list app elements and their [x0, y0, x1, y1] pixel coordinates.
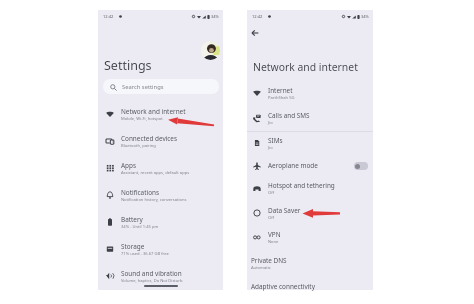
button[interactable]: Hotspot and tethering	[247, 179, 373, 197]
staticText: Jio	[268, 145, 273, 151]
staticText: Storage	[121, 242, 145, 251]
staticText: Sound and vibration	[121, 269, 182, 278]
staticText: Network and internet	[121, 107, 186, 116]
button[interactable]: Battery	[98, 212, 223, 232]
staticText: 34%	[211, 14, 219, 19]
button[interactable]: Data Saver	[247, 204, 373, 222]
staticText: Volume, haptics, Do Not Disturb	[121, 278, 183, 284]
button[interactable]: Apps	[98, 158, 223, 178]
staticText: Automatic	[251, 265, 271, 271]
staticText: 34%	[361, 14, 369, 19]
staticText: Connected devices	[121, 134, 178, 143]
staticText: Internet	[268, 86, 293, 95]
staticText: 34% - Until 1:45 pm	[121, 224, 159, 230]
staticText: Jio	[268, 120, 273, 126]
staticText: Private DNS	[251, 256, 287, 265]
button[interactable]: Network and internet	[98, 104, 223, 124]
button[interactable]: Private DNS	[247, 254, 373, 272]
staticText: Network and internet	[253, 60, 358, 74]
staticText: Off	[268, 190, 275, 196]
staticText: Notification history, conversations	[121, 197, 187, 203]
button[interactable]: Back	[248, 26, 262, 40]
button[interactable]: Connected devices	[98, 131, 223, 151]
staticText: None	[268, 239, 279, 245]
button[interactable]: Aeroplane mode toggle	[354, 162, 368, 170]
staticText: Battery	[121, 215, 143, 224]
staticText: 71% used - 36.67 GB free	[121, 251, 169, 257]
staticText: 12:42	[252, 14, 263, 20]
staticText: Settings	[104, 57, 152, 74]
button[interactable]: Search settings	[103, 79, 219, 94]
staticText: Aeroplane mode	[268, 161, 318, 170]
button[interactable]: Aeroplane mode	[247, 160, 373, 171]
staticText: VPN	[268, 230, 281, 239]
button[interactable]: Sound and vibration	[98, 266, 223, 286]
button[interactable]: VPN	[247, 228, 373, 246]
staticText: ParthShah 5G	[268, 95, 295, 101]
staticText: Off	[268, 215, 275, 221]
staticText: Calls and SMS	[268, 111, 310, 120]
button[interactable]: Adaptive connectivity	[247, 281, 373, 292]
staticText: Search settings	[122, 83, 164, 91]
staticText: SIMs	[268, 136, 283, 145]
button[interactable]: Calls and SMS	[247, 109, 373, 127]
staticText: 12:42	[103, 14, 114, 20]
button[interactable]: Storage	[98, 239, 223, 259]
staticText: Assistant, recent apps, default apps	[121, 170, 190, 176]
staticText: Notifications	[121, 188, 160, 197]
staticText: Apps	[121, 161, 137, 170]
button[interactable]: Account	[201, 41, 220, 60]
staticText: Bluetooth, pairing	[121, 143, 156, 149]
staticText: Data Saver	[268, 206, 301, 215]
button[interactable]: SIMs	[247, 134, 373, 152]
staticText: Adaptive connectivity	[251, 282, 315, 291]
button[interactable]: Notifications	[98, 185, 223, 205]
staticText: Mobile, Wi-Fi, hotspot	[121, 116, 163, 122]
button[interactable]: Internet	[247, 84, 373, 102]
staticText: Hotspot and tethering	[268, 181, 335, 190]
